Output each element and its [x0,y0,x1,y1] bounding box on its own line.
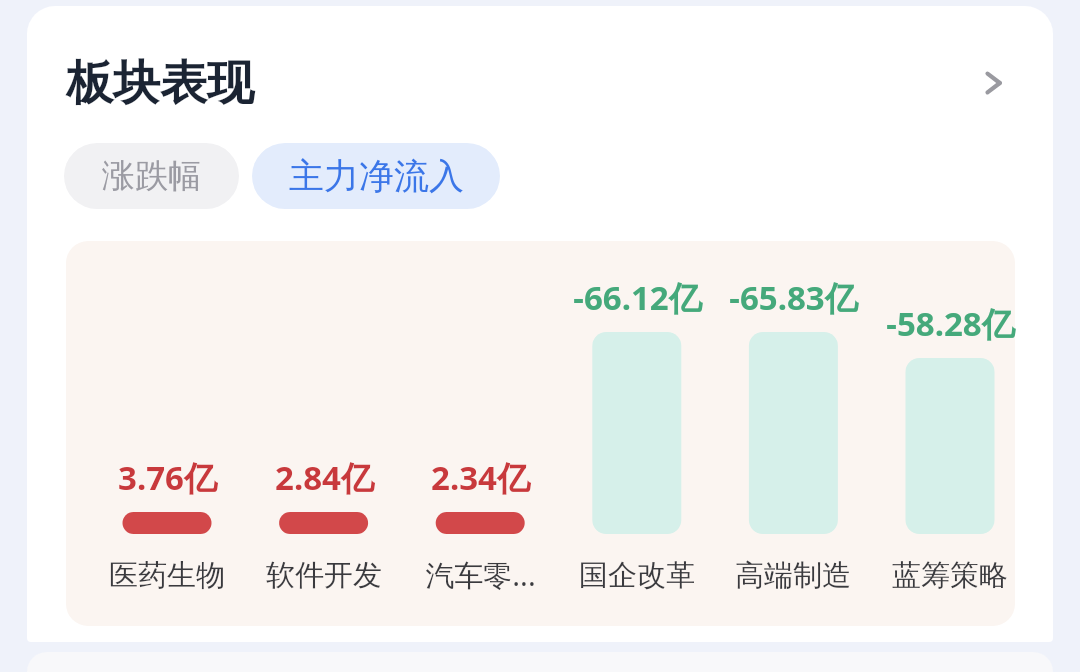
staticText: 板块表现 [66,54,254,113]
staticText: 3.76亿 [118,455,217,500]
staticText: 医药生物 [109,557,225,594]
staticText: 国企改革 [579,557,695,594]
button[interactable]: 高端制造 [715,553,871,597]
staticText: 2.34亿 [431,455,530,500]
staticText: 主力净流入 [289,154,464,198]
button[interactable]: 汽车零... [402,553,558,597]
staticText: 2.84亿 [275,455,374,500]
button[interactable]: 主力净流入 [252,143,500,209]
button[interactable]: 板块表现 [66,40,1018,126]
button[interactable]: 涨跌幅 [64,143,239,209]
staticText: -58.28亿 [886,301,1015,346]
staticText: 汽车零... [425,555,536,595]
button[interactable]: 软件开发 [246,553,402,597]
staticText: 软件开发 [266,557,382,594]
staticText: 蓝筹策略 [892,557,1008,594]
staticText: 涨跌幅 [102,155,201,197]
staticText: 高端制造 [735,557,851,594]
staticText: -66.12亿 [573,275,702,320]
button[interactable]: 国企改革 [559,553,715,597]
staticText: -65.83亿 [729,275,858,320]
button[interactable]: 医药生物 [89,553,245,597]
button[interactable]: 蓝筹策略 [872,553,1028,597]
button[interactable] [66,241,1015,626]
other: 查看板块表现详情 [970,59,1018,107]
